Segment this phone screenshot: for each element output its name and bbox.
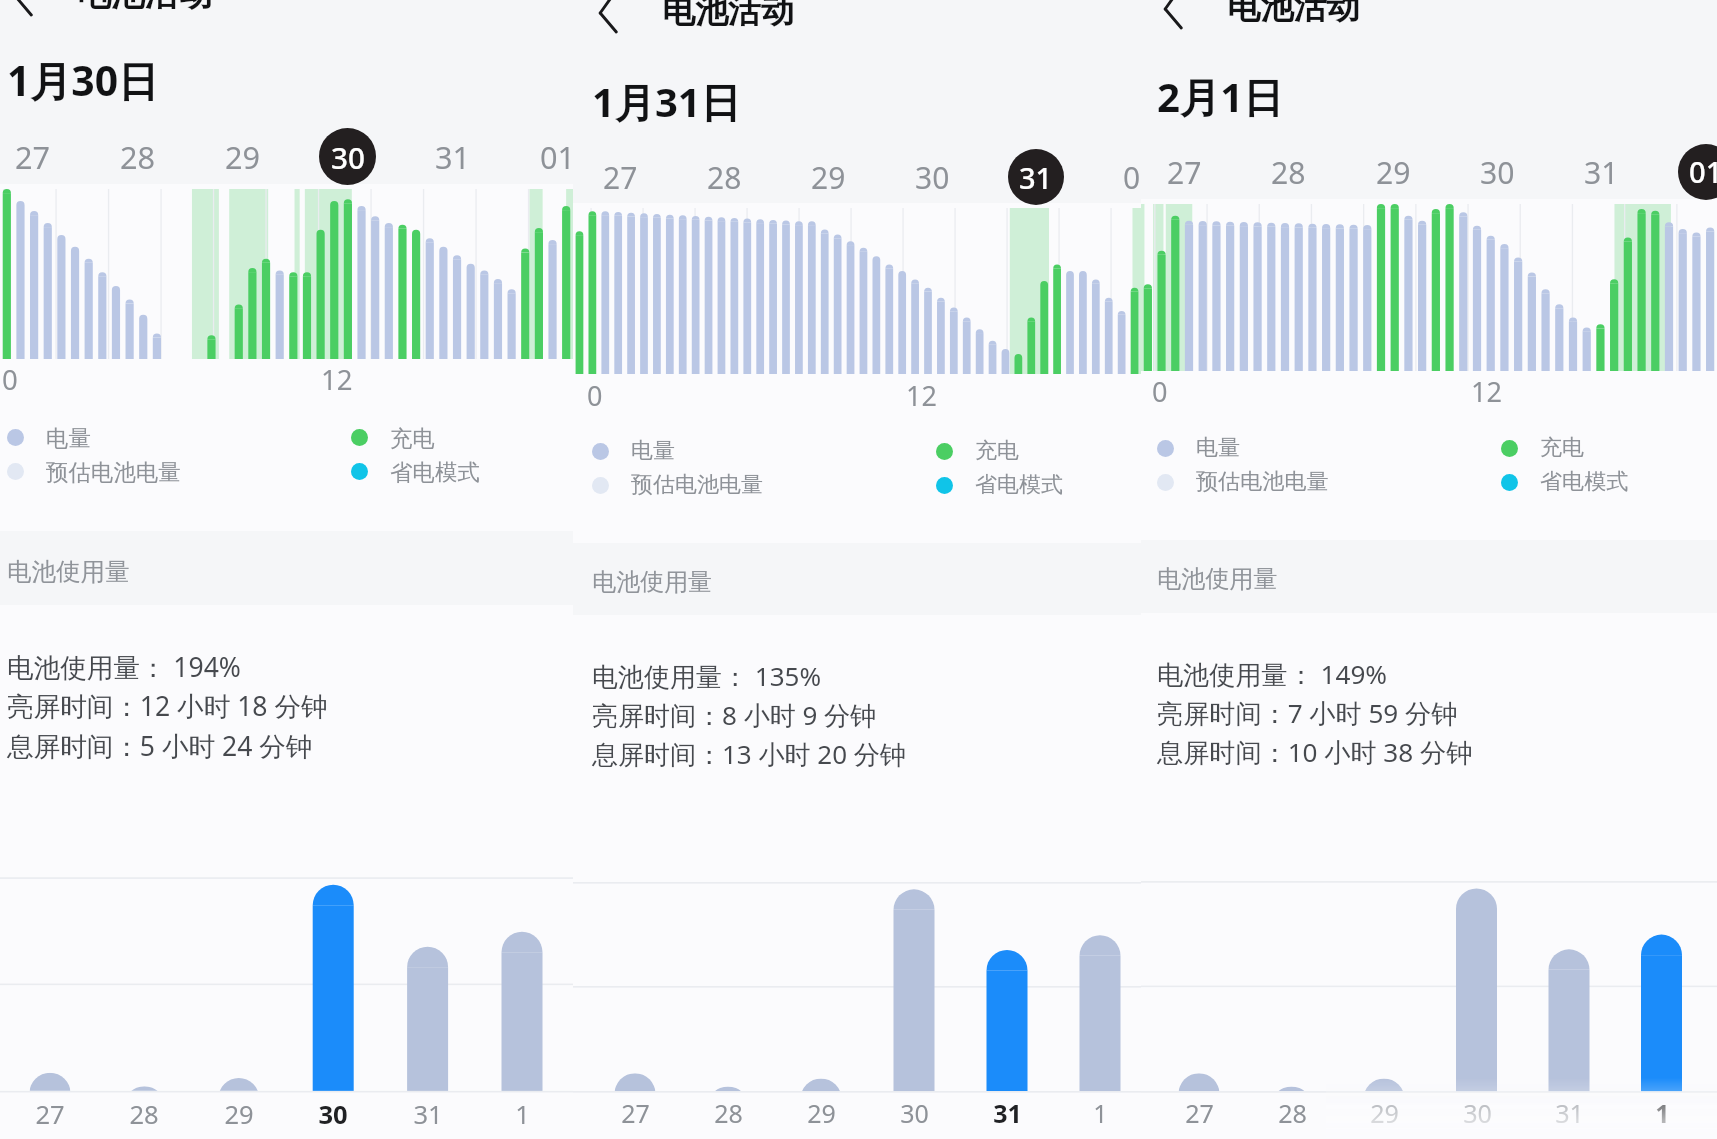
staticText: 29 (1376, 152, 1411, 193)
staticText: 充电 (975, 437, 1019, 465)
staticText: 30 (331, 137, 365, 177)
staticText: 省电模式 (390, 458, 480, 486)
staticText: 31 (435, 136, 471, 178)
staticText: 省电模式 (975, 471, 1063, 499)
staticText: 预估电池电量 (631, 471, 763, 499)
staticText: 12 (321, 361, 353, 399)
staticText: 27 (35, 1097, 65, 1132)
staticText: 预估电池电量 (46, 458, 181, 486)
staticText: 0 (2, 361, 18, 399)
staticText: 省电模式 (1540, 468, 1629, 496)
staticText: 亮屏时间：7 小时 59 分钟 (1157, 695, 1458, 731)
staticText: 1月31日 (592, 74, 741, 129)
staticText: 充电 (390, 424, 435, 452)
staticText: 预估电池电量 (1196, 468, 1329, 496)
staticText: 亮屏时间：12 小时 18 分钟 (7, 688, 328, 724)
staticText: 电池使用量： 149% (1157, 656, 1388, 692)
staticText: 30 (900, 1096, 929, 1130)
staticText: 电池使用量 (7, 556, 130, 587)
staticText: 28 (714, 1096, 743, 1130)
staticText: 1 (1655, 1096, 1670, 1130)
staticText: 28 (129, 1097, 159, 1132)
staticText: 息屏时间：5 小时 24 分钟 (7, 728, 313, 764)
staticText: 31 (993, 1096, 1022, 1130)
staticText: 31 (1555, 1096, 1584, 1130)
staticText: 亮屏时间：8 小时 9 分钟 (592, 697, 877, 733)
staticText: 31 (413, 1097, 443, 1132)
staticText: 28 (707, 157, 742, 198)
staticText: 27 (15, 136, 51, 178)
staticText: 电池活动 (77, 0, 212, 15)
staticText: 30 (1463, 1096, 1492, 1130)
staticText: 电池使用量： 194% (7, 649, 241, 685)
staticText: 29 (225, 136, 261, 178)
staticText: 29 (224, 1097, 254, 1132)
staticText: 电池活动 (662, 0, 794, 32)
staticText: 29 (1370, 1096, 1399, 1130)
staticText: 27 (1167, 152, 1202, 193)
button[interactable]: Back (0, 0, 55, 28)
staticText: 31 (1584, 152, 1619, 193)
staticText: 1 (515, 1097, 530, 1132)
staticText: 1月30日 (7, 52, 159, 108)
staticText: 28 (120, 136, 156, 178)
staticText: 27 (1185, 1096, 1214, 1130)
staticText: 29 (807, 1096, 836, 1130)
staticText: 电量 (46, 424, 91, 452)
staticText: 28 (1271, 152, 1306, 193)
staticText: 1 (1093, 1096, 1108, 1130)
staticText: 2月1日 (1157, 69, 1284, 124)
button[interactable]: Back (576, 0, 640, 45)
staticText: 电池活动 (1227, 0, 1360, 28)
staticText: 29 (811, 157, 846, 198)
staticText: 30 (915, 157, 950, 198)
staticText: 息屏时间：13 小时 20 分钟 (592, 736, 906, 772)
staticText: 30 (1480, 152, 1515, 193)
staticText: 电量 (631, 437, 675, 465)
staticText: 息屏时间：10 小时 38 分钟 (1157, 734, 1473, 770)
staticText: 12 (906, 377, 937, 414)
staticText: 31 (1019, 158, 1053, 197)
staticText: 12 (1471, 373, 1503, 410)
staticText: 电量 (1196, 434, 1241, 462)
staticText: 充电 (1540, 434, 1585, 462)
staticText: 电池使用量 (592, 567, 712, 597)
staticText: 27 (621, 1096, 650, 1130)
staticText: 电池使用量 (1157, 564, 1278, 594)
button[interactable]: Back (1141, 0, 1205, 41)
staticText: 01 (1689, 152, 1717, 192)
staticText: 27 (603, 157, 638, 198)
staticText: 0 (587, 377, 603, 414)
staticText: 01 (1123, 157, 1158, 198)
staticText: 28 (1278, 1096, 1307, 1130)
staticText: 电池使用量： 135% (592, 658, 821, 694)
staticText: 30 (318, 1097, 348, 1132)
staticText: 01 (540, 136, 576, 178)
staticText: 0 (1152, 373, 1168, 410)
